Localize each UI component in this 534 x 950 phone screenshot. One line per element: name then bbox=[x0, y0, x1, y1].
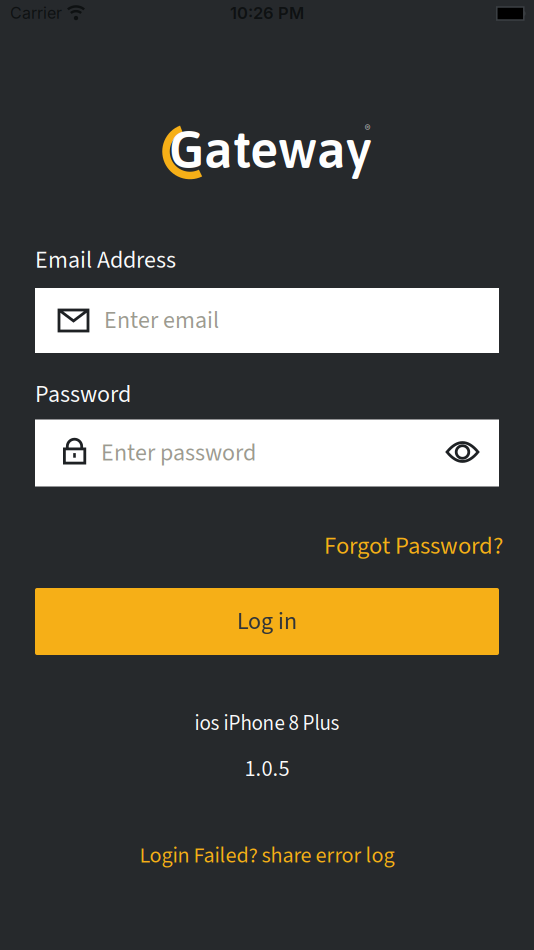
button[interactable]: Show password bbox=[439, 436, 486, 470]
staticText: 1.0.5 bbox=[244, 753, 289, 785]
textField[interactable]: Enter email bbox=[104, 303, 487, 338]
button[interactable]: Login Failed? share error log bbox=[139, 840, 394, 871]
staticText: Enter password bbox=[101, 436, 256, 470]
staticText: Gateway bbox=[169, 119, 371, 179]
staticText: ® bbox=[364, 122, 370, 133]
button[interactable]: Forgot Password? bbox=[324, 528, 503, 563]
staticText: Login Failed? share error log bbox=[139, 840, 394, 871]
textField[interactable]: Enter password bbox=[101, 436, 424, 470]
staticText: Forgot Password? bbox=[324, 528, 503, 563]
staticText: Email Address bbox=[35, 243, 176, 277]
button[interactable]: Log in bbox=[35, 588, 499, 655]
staticText: Enter email bbox=[104, 303, 219, 338]
staticText: Password bbox=[35, 377, 131, 411]
staticText: ios iPhone 8 Plus bbox=[194, 708, 339, 738]
staticText: Log in bbox=[237, 604, 297, 639]
staticText: 10:26 PM bbox=[230, 3, 304, 23]
staticText: Carrier bbox=[10, 3, 62, 23]
